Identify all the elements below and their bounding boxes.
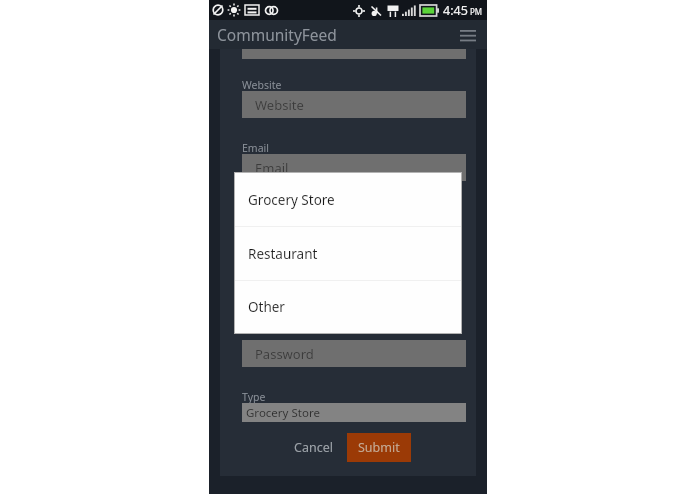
button[interactable]: Grocery Store [242, 403, 466, 422]
staticText: 4:45 [443, 2, 468, 19]
staticText: Type [242, 390, 266, 404]
staticText: CommunityFeed [217, 24, 337, 45]
button[interactable]: Password [242, 340, 466, 367]
button[interactable]: Restaurant [235, 227, 461, 280]
staticText: Email [255, 159, 289, 177]
button[interactable]: Email [242, 154, 466, 181]
staticText: PM [470, 6, 483, 17]
staticText: Other [248, 298, 285, 316]
button[interactable]: Menu [455, 22, 481, 48]
button[interactable]: Other [235, 281, 461, 333]
staticText: Cancel [294, 439, 333, 456]
staticText: Grocery Store [246, 405, 320, 421]
staticText: Password [255, 345, 314, 363]
button[interactable]: Submit [347, 433, 411, 462]
staticText: Submit [358, 439, 400, 456]
staticText: Website [242, 78, 282, 92]
staticText: Email [242, 141, 269, 155]
button[interactable]: Website [242, 91, 466, 118]
button[interactable]: Cancel [294, 439, 333, 456]
staticText: Website [255, 96, 304, 114]
staticText: Grocery Store [248, 191, 335, 209]
button[interactable]: Grocery Store [235, 173, 461, 226]
staticText: Restaurant [248, 245, 318, 263]
